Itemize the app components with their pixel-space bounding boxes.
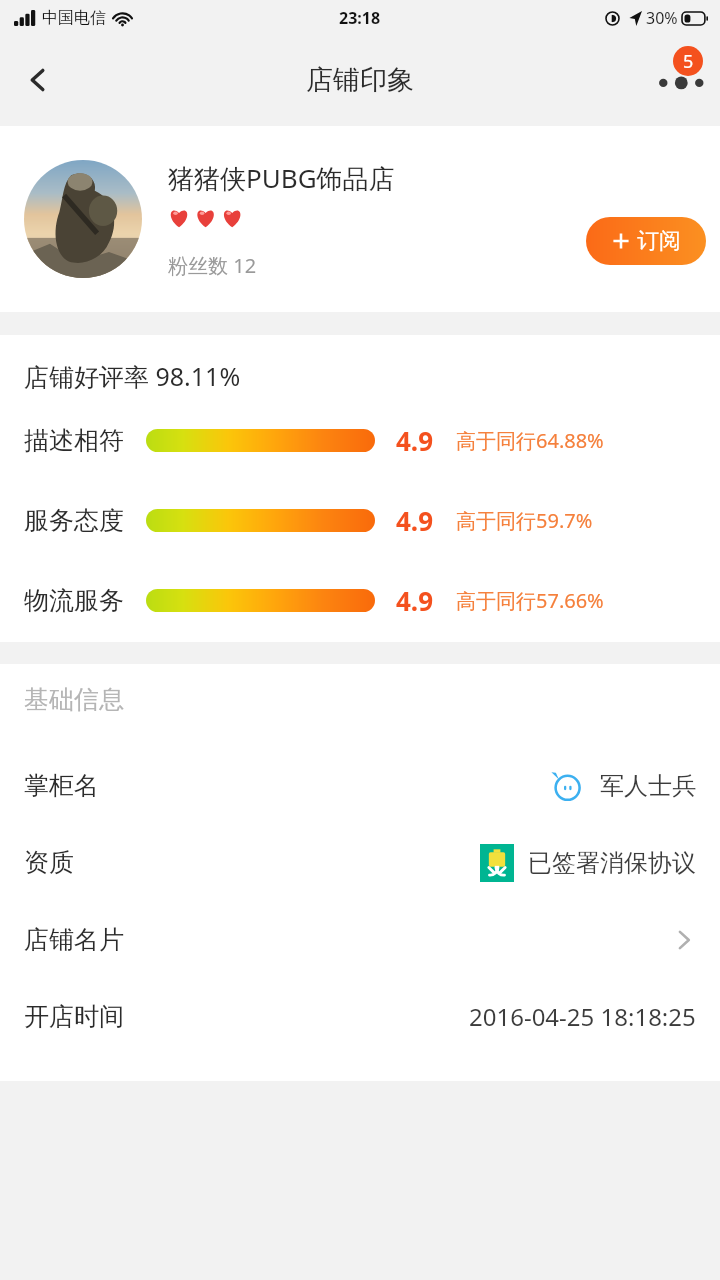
staticText: 开店时间 [24, 1001, 124, 1032]
staticText: 资质 [24, 847, 74, 878]
staticText: 4.9 [396, 423, 434, 458]
staticText: 已签署消保协议 [528, 848, 696, 878]
staticText: 店铺好评率 98.11% [24, 359, 241, 393]
button[interactable]: 店铺名片 [0, 901, 720, 978]
button[interactable]: Back [10, 52, 66, 108]
staticText: 高于同行64.88% [456, 427, 604, 454]
staticText: 中国电信 [42, 8, 106, 28]
staticText: 高于同行57.66% [456, 587, 604, 614]
staticText: 店铺印象 [306, 63, 414, 97]
button[interactable]: More options [648, 48, 712, 112]
staticText: 订阅 [637, 227, 681, 255]
staticText: 30% [646, 7, 678, 29]
staticText: 服务态度 [24, 505, 124, 536]
staticText: 5 [683, 49, 694, 74]
staticText: 4.9 [396, 583, 434, 618]
staticText: 高于同行59.7% [456, 507, 593, 534]
staticText: 描述相符 [24, 425, 124, 456]
staticText: 物流服务 [24, 585, 124, 616]
button[interactable]: 订阅 [586, 217, 706, 265]
staticText: 粉丝数 12 [168, 252, 257, 279]
staticText: 基础信息 [24, 684, 124, 715]
staticText: 猪猪侠PUBG饰品店 [168, 160, 395, 196]
staticText: 军人士兵 [600, 771, 696, 801]
staticText: 2016-04-25 18:18:25 [469, 1000, 696, 1033]
staticText: 4.9 [396, 503, 434, 538]
staticText: 掌柜名 [24, 770, 99, 801]
staticText: 店铺名片 [24, 924, 124, 955]
staticText: 23:18 [339, 7, 381, 29]
